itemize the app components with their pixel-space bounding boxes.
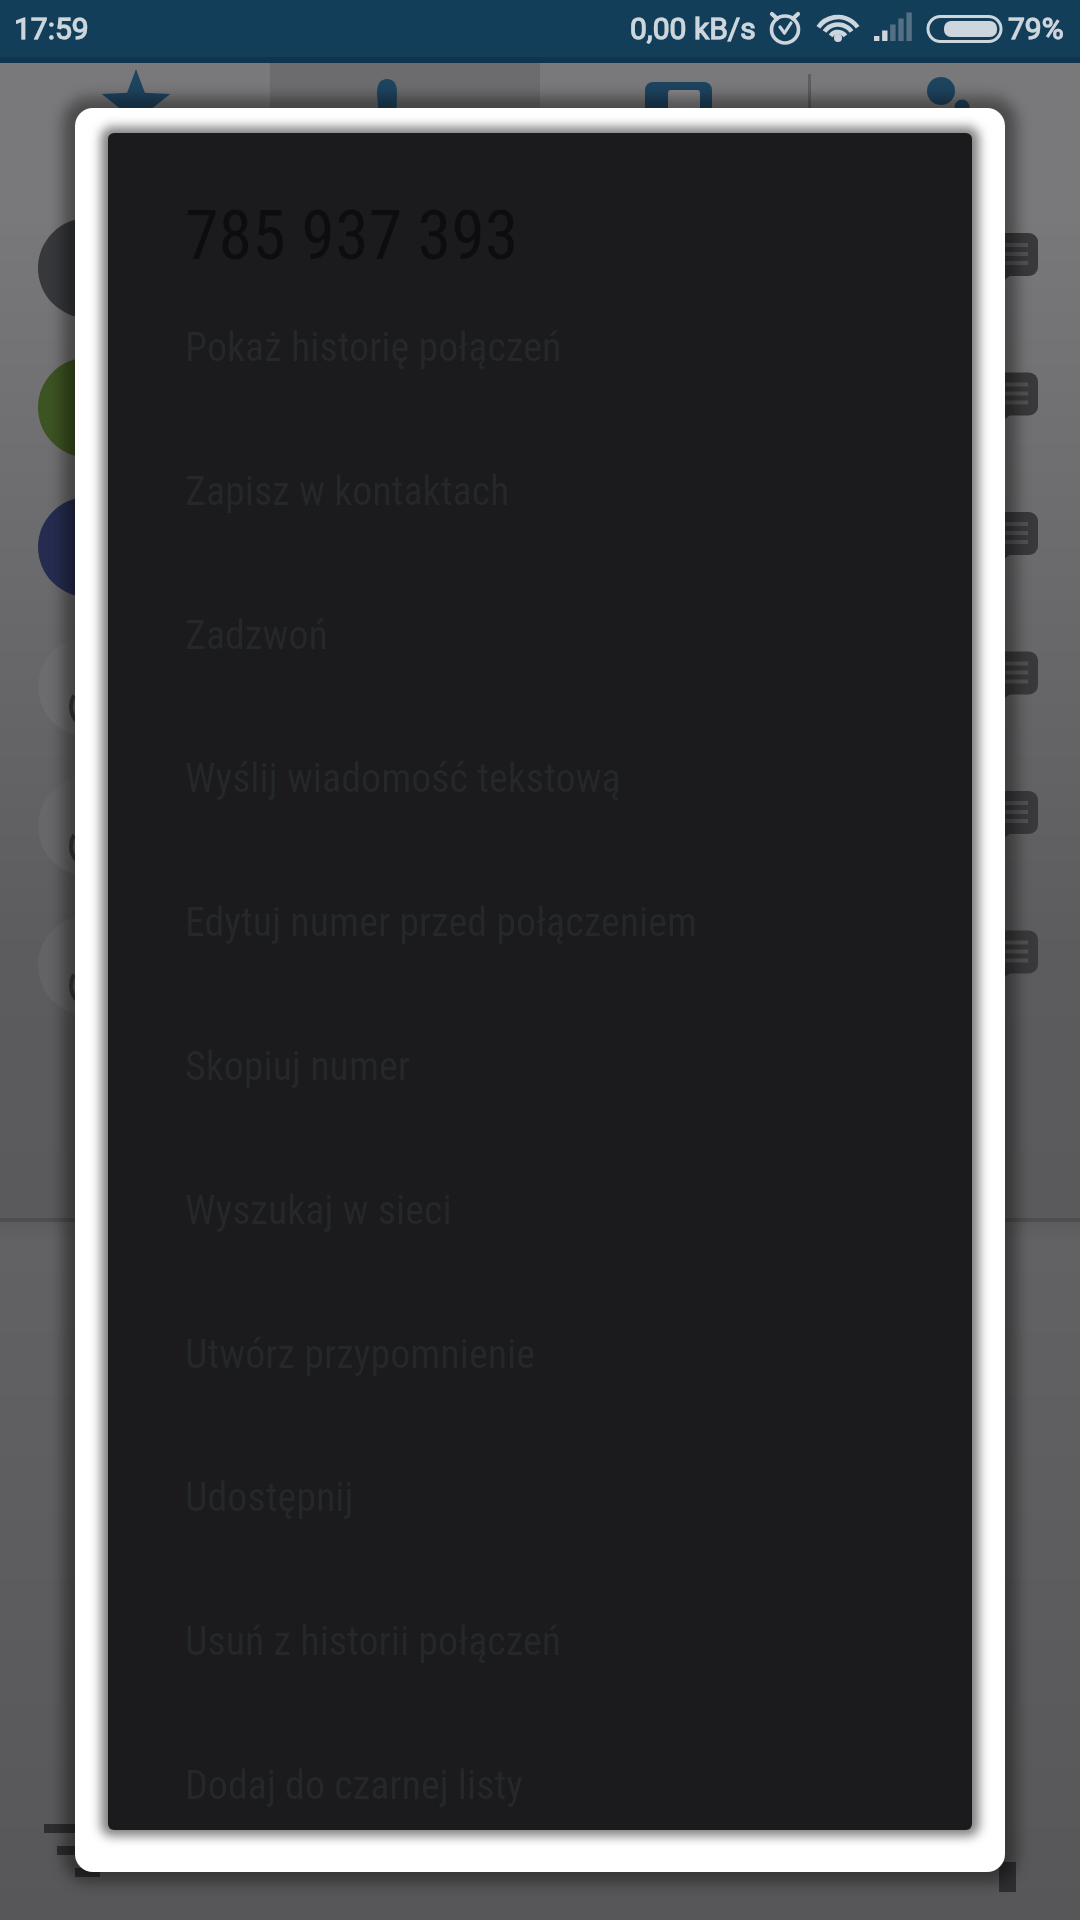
staticText: 785 937 393 <box>185 196 519 276</box>
button[interactable] <box>270 63 540 222</box>
staticText: Wyślij wiadomość tekstową <box>185 755 621 802</box>
staticText: 17:59 <box>14 11 89 46</box>
staticText: Zadzwoń <box>185 612 328 659</box>
staticText: Skopiuj numer <box>185 1043 410 1090</box>
button[interactable]: Dodaj do czarnej listy <box>112 1713 968 1857</box>
staticText: Udostępnij <box>185 1474 354 1521</box>
staticText: Usuń z historii połączeń <box>185 1618 562 1665</box>
staticText: Pokaż historię połączeń <box>185 324 562 371</box>
staticText: Utwórz przypomnienie <box>185 1331 535 1378</box>
button[interactable] <box>0 63 270 222</box>
staticText: Zapisz w kontaktach <box>185 468 510 515</box>
button[interactable] <box>540 63 810 222</box>
staticText: Dodaj do czarnej listy <box>185 1762 523 1809</box>
staticText: 0,00 kB/s <box>630 11 756 46</box>
button[interactable] <box>810 63 1080 222</box>
staticText: 79% <box>1008 11 1064 46</box>
staticText: Wyszukaj w sieci <box>185 1187 452 1234</box>
staticText: Edytuj numer przed połączeniem <box>185 899 698 946</box>
